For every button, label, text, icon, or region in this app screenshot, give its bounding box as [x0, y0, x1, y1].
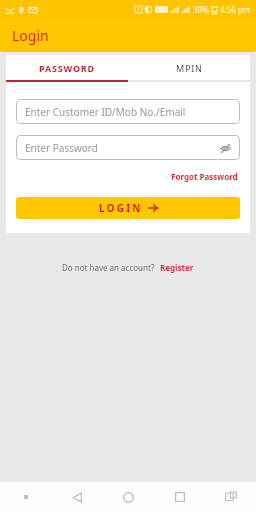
staticText: Login [12, 26, 49, 45]
button[interactable]: Menu [0, 482, 52, 512]
button[interactable]: Show password [218, 141, 232, 155]
button[interactable]: MPIN [128, 55, 250, 80]
staticText: 30% [193, 4, 209, 15]
staticText: Enter Password [25, 141, 98, 155]
staticText: Do not have an account? [62, 262, 155, 273]
button[interactable]: Back [52, 482, 103, 512]
button[interactable]: Register [159, 261, 195, 274]
button[interactable]: Forgot Password [169, 169, 240, 184]
staticText: LOGIN [99, 201, 143, 215]
button[interactable]: LOGIN [16, 197, 240, 219]
button[interactable]: Enter Customer ID/Mob No./Email [16, 99, 240, 124]
button[interactable]: Home [103, 482, 154, 512]
staticText: Enter Customer ID/Mob No./Email [25, 105, 186, 119]
staticText: PASSWORD [39, 62, 95, 74]
button[interactable]: Enter Password [16, 135, 240, 160]
button[interactable]: Screenshot [205, 482, 256, 512]
button[interactable]: Recent apps [154, 482, 205, 512]
staticText: 4:56 pm [220, 4, 251, 15]
staticText: MPIN [176, 62, 203, 74]
button[interactable]: PASSWORD [6, 55, 128, 80]
staticText: 9 [19, 4, 24, 15]
